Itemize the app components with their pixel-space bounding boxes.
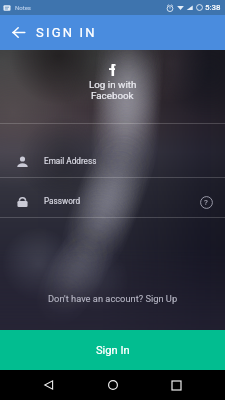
button[interactable]: Help bbox=[195, 191, 217, 213]
button[interactable]: Sign In bbox=[0, 330, 225, 370]
staticText: Email Address bbox=[44, 156, 97, 166]
staticText: SIGN IN bbox=[36, 25, 97, 40]
button[interactable]: Log in with bbox=[0, 64, 225, 101]
staticText: Facebook bbox=[91, 90, 134, 101]
button[interactable]: Email Address bbox=[0, 138, 225, 177]
staticText: Log in with bbox=[89, 79, 137, 90]
staticText: ? bbox=[204, 198, 208, 207]
staticText: Password bbox=[44, 196, 81, 206]
button[interactable]: Recent apps bbox=[161, 370, 191, 400]
staticText: 5:38 bbox=[205, 3, 221, 12]
button[interactable]: Home bbox=[98, 370, 128, 400]
staticText: Notes bbox=[15, 4, 31, 11]
button[interactable]: Password bbox=[0, 178, 225, 217]
button[interactable]: Back bbox=[0, 15, 36, 50]
button[interactable]: Don't have an account? Sign Up bbox=[44, 289, 182, 308]
button[interactable]: Back bbox=[34, 370, 64, 400]
staticText: Sign In bbox=[96, 344, 130, 357]
